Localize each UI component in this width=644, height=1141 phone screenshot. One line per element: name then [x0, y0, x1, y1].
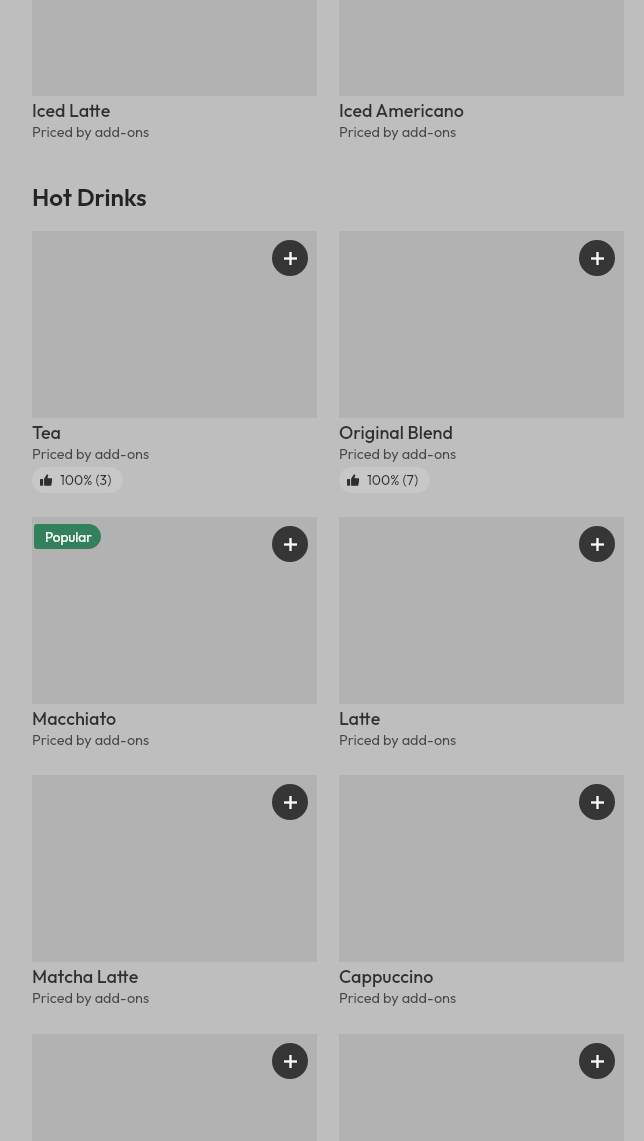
button[interactable]: Iced Latte: [32, 0, 317, 140]
button[interactable]: Add Tea: [32, 231, 317, 493]
staticText: Priced by add-ons: [32, 122, 150, 140]
button[interactable]: Add Matcha Latte: [272, 784, 308, 820]
staticText: Cappuccino: [339, 965, 434, 988]
button[interactable]: Add Original Blend: [339, 231, 624, 493]
button[interactable]: Add Cappuccino: [339, 775, 624, 1006]
staticText: Iced Americano: [339, 99, 464, 122]
button[interactable]: Popular: [32, 517, 317, 748]
button[interactable]: Add Matcha Latte: [32, 775, 317, 1006]
staticText: Popular: [45, 528, 92, 545]
staticText: Macchiato: [32, 707, 117, 730]
staticText: Latte: [339, 707, 381, 730]
button[interactable]: Add Espresso: [272, 1043, 308, 1079]
button[interactable]: Add Macchiato: [272, 526, 308, 562]
staticText: Priced by add-ons: [32, 444, 150, 462]
staticText: 100% (7): [367, 471, 419, 489]
button[interactable]: Add Cappuccino: [579, 784, 615, 820]
button[interactable]: Popular: [34, 524, 101, 549]
button[interactable]: Add Flat White: [579, 1043, 615, 1079]
staticText: Iced Latte: [32, 99, 111, 122]
staticText: Priced by add-ons: [32, 988, 150, 1006]
button[interactable]: Add Latte: [579, 526, 615, 562]
staticText: Priced by add-ons: [339, 730, 457, 748]
button[interactable]: Add Original Blend: [579, 240, 615, 276]
staticText: Matcha Latte: [32, 965, 139, 988]
button[interactable]: Add Espresso: [32, 1034, 317, 1141]
staticText: 100% (3): [60, 471, 112, 489]
staticText: Priced by add-ons: [339, 988, 457, 1006]
staticText: Priced by add-ons: [339, 122, 457, 140]
staticText: Priced by add-ons: [339, 444, 457, 462]
button[interactable]: Add Flat White: [339, 1034, 624, 1141]
staticText: Original Blend: [339, 421, 453, 444]
button[interactable]: 100% (3): [32, 467, 123, 493]
button[interactable]: Add Tea: [272, 240, 308, 276]
button[interactable]: Add Latte: [339, 517, 624, 748]
staticText: Tea: [32, 421, 61, 444]
button[interactable]: Iced Americano: [339, 0, 624, 140]
staticText: Hot Drinks: [32, 182, 147, 212]
button[interactable]: 100% (7): [339, 467, 430, 493]
staticText: Priced by add-ons: [32, 730, 150, 748]
